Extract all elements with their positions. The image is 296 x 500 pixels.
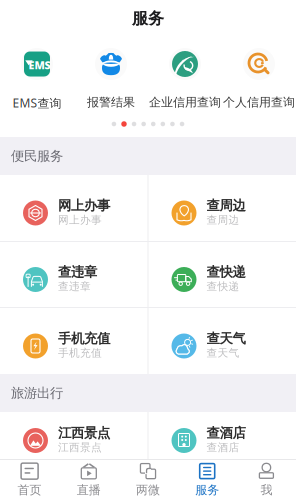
staticText: 查快递 — [206, 280, 239, 293]
button[interactable]: 查违章 — [0, 242, 147, 307]
button[interactable]: 服务 — [178, 459, 237, 500]
button[interactable]: 直播 — [59, 459, 118, 500]
staticText: 网上办事 — [58, 197, 110, 214]
staticText: 查周边 — [206, 197, 245, 214]
button[interactable]: 江西景点 — [0, 412, 147, 459]
staticText: 首页 — [18, 483, 42, 497]
button[interactable]: 查天气 — [148, 308, 296, 374]
button[interactable]: 查周边 — [148, 175, 296, 241]
staticText: 个人信用查询 — [223, 95, 295, 110]
button[interactable]: 网上办事 — [0, 175, 147, 241]
staticText: EMS — [28, 58, 50, 72]
staticText: 查周边 — [206, 213, 239, 226]
staticText: 便民服务 — [11, 148, 63, 164]
staticText: 查违章 — [58, 280, 91, 293]
button[interactable]: 个人信用查询 — [222, 37, 296, 111]
staticText: 江西景点 — [58, 425, 110, 441]
button[interactable]: 手机充值 — [0, 308, 147, 374]
staticText: 查天气 — [206, 346, 239, 359]
staticText: 服务 — [132, 9, 164, 28]
staticText: 企业信用查询 — [149, 95, 221, 110]
button[interactable]: EMS — [0, 37, 74, 111]
button[interactable]: 查酒店 — [148, 412, 296, 459]
staticText: 直播 — [77, 483, 101, 497]
staticText: 报警结果 — [87, 95, 135, 110]
staticText: 查违章 — [58, 264, 97, 280]
button[interactable]: 首页 — [0, 459, 59, 500]
staticText: 江西景点 — [58, 441, 102, 454]
button[interactable]: 报警结果 — [74, 37, 148, 111]
staticText: 查酒店 — [206, 441, 239, 454]
staticText: 手机充值 — [58, 346, 102, 359]
staticText: 查快递 — [206, 264, 245, 280]
button[interactable]: 我 — [237, 459, 296, 500]
button[interactable]: 企业信用查询 — [148, 37, 222, 111]
staticText: EMS查询 — [12, 95, 61, 111]
staticText: 手机充值 — [58, 330, 110, 347]
staticText: 查天气 — [206, 330, 245, 347]
staticText: 网上办事 — [58, 213, 102, 226]
staticText: 我 — [260, 483, 272, 497]
staticText: 旅游出行 — [11, 385, 63, 401]
staticText: 查酒店 — [206, 425, 245, 441]
staticText: 两微 — [136, 483, 160, 497]
button[interactable]: 查快递 — [148, 242, 296, 307]
staticText: 服务 — [195, 483, 219, 497]
button[interactable]: 两微 — [118, 459, 178, 500]
